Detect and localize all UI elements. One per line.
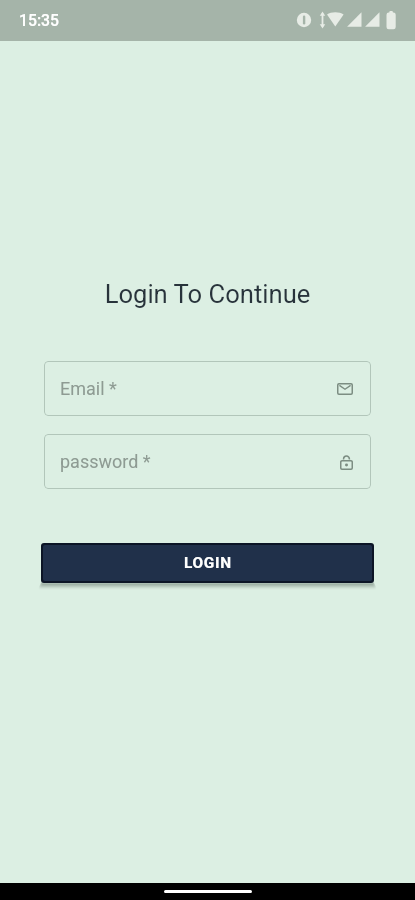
other: Password — [340, 454, 353, 470]
staticText: LOGIN — [184, 554, 232, 572]
button[interactable]: LOGIN — [43, 545, 372, 581]
staticText: Login To Continue — [0, 279, 415, 309]
button[interactable]: password * — [44, 434, 371, 489]
staticText: password * — [60, 451, 151, 472]
button[interactable]: Email * — [44, 361, 371, 416]
other: Email — [337, 383, 353, 395]
staticText: Email * — [60, 378, 117, 399]
staticText: 15:35 — [19, 11, 60, 30]
